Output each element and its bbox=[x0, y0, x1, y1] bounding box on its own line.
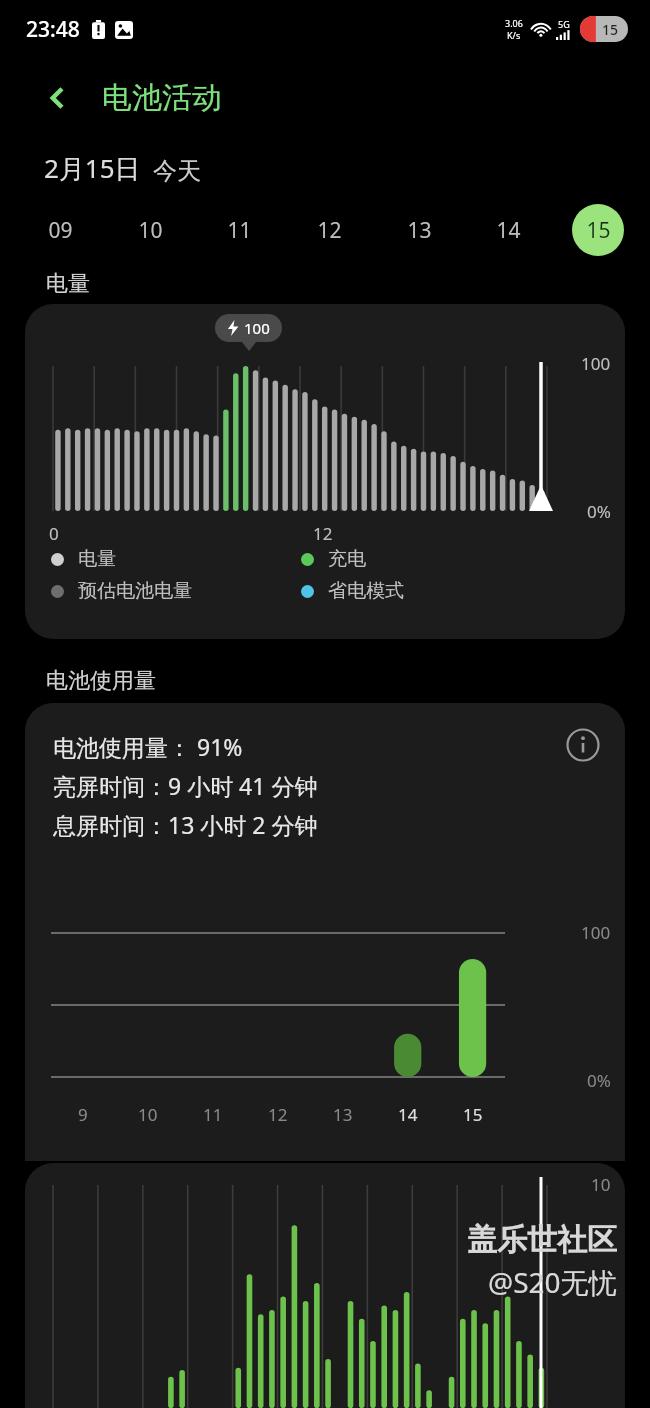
staticText: 12 bbox=[268, 1103, 288, 1126]
staticText: 10 bbox=[138, 216, 163, 245]
staticText: 100 bbox=[581, 352, 611, 375]
button[interactable]: 100 bbox=[25, 304, 625, 639]
staticText: 3.06 bbox=[505, 17, 523, 29]
button[interactable]: 09 bbox=[34, 204, 86, 256]
staticText: 电池使用量 bbox=[46, 667, 156, 695]
button[interactable]: Info bbox=[563, 725, 603, 765]
staticText: 电量 bbox=[78, 547, 116, 571]
button[interactable]: 15 bbox=[572, 204, 624, 256]
staticText: 100 bbox=[244, 318, 270, 338]
button[interactable]: 11 bbox=[213, 204, 265, 256]
staticText: 10 bbox=[591, 1173, 611, 1196]
staticText: 亮屏时间：9 小时 41 分钟 bbox=[53, 770, 318, 801]
staticText: K/s bbox=[507, 29, 521, 41]
button[interactable]: 10 bbox=[25, 1163, 625, 1408]
staticText: 息屏时间：13 小时 2 分钟 bbox=[53, 809, 318, 840]
staticText: 14 bbox=[496, 216, 521, 245]
staticText: 100 bbox=[581, 921, 611, 944]
staticText: 09 bbox=[48, 216, 73, 245]
staticText: 13 bbox=[407, 216, 432, 245]
staticText: 11 bbox=[203, 1103, 223, 1126]
staticText: 盖乐世社区 bbox=[467, 1221, 617, 1259]
staticText: 5G bbox=[558, 18, 570, 30]
staticText: 充电 bbox=[328, 547, 366, 571]
staticText: 23:48 bbox=[26, 15, 80, 44]
staticText: 2月15日 bbox=[44, 150, 141, 186]
staticText: 15 bbox=[586, 216, 611, 245]
button[interactable]: 10 bbox=[124, 204, 176, 256]
staticText: 9 bbox=[78, 1103, 88, 1126]
staticText: 15 bbox=[602, 20, 619, 39]
staticText: 电池使用量： 91% bbox=[53, 731, 243, 762]
staticText: 12 bbox=[317, 216, 342, 245]
staticText: 电池活动 bbox=[102, 79, 222, 117]
staticText: 0% bbox=[587, 1069, 611, 1092]
button[interactable]: 14 bbox=[482, 204, 534, 256]
staticText: 预估电池电量 bbox=[78, 579, 192, 603]
staticText: 12 bbox=[313, 522, 333, 545]
staticText: 省电模式 bbox=[328, 579, 404, 603]
staticText: 0 bbox=[49, 522, 59, 545]
staticText: 11 bbox=[227, 216, 252, 245]
staticText: 10 bbox=[138, 1103, 158, 1126]
staticText: 13 bbox=[333, 1103, 353, 1126]
staticText: 电量 bbox=[46, 270, 90, 298]
staticText: 14 bbox=[398, 1103, 418, 1126]
staticText: 今天 bbox=[153, 156, 201, 186]
staticText: 0% bbox=[587, 500, 611, 523]
button[interactable]: Back bbox=[36, 76, 80, 120]
button[interactable]: 电池使用量： 91% bbox=[25, 703, 625, 1161]
button[interactable]: 12 bbox=[303, 204, 355, 256]
staticText: 15 bbox=[463, 1103, 483, 1126]
button[interactable]: 13 bbox=[393, 204, 445, 256]
staticText: @S20无忧 bbox=[488, 1263, 617, 1301]
